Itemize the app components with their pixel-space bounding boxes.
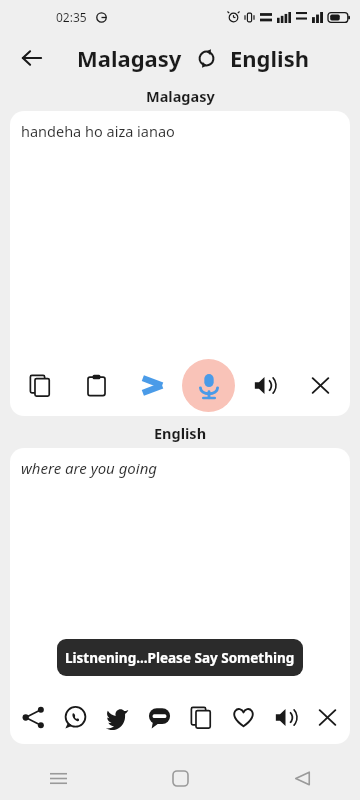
button[interactable]: Recents <box>34 756 82 800</box>
staticText: where are you going <box>21 458 158 478</box>
button[interactable]: Favorite <box>222 690 264 744</box>
button[interactable]: Speak <box>236 354 292 416</box>
button[interactable]: Malagasy <box>77 43 182 73</box>
button[interactable]: Share <box>12 690 54 744</box>
button[interactable]: Speak <box>264 690 306 744</box>
staticText: English <box>230 43 310 73</box>
button[interactable]: Back <box>10 36 54 80</box>
staticText: English <box>154 423 207 443</box>
button[interactable]: Voice input <box>182 359 235 412</box>
button[interactable]: Copy <box>12 354 68 416</box>
button[interactable]: Swap languages <box>192 44 220 72</box>
button[interactable]: Copy <box>180 690 222 744</box>
button[interactable]: Back <box>278 756 326 800</box>
button[interactable]: WhatsApp <box>54 690 96 744</box>
button[interactable]: Twitter <box>96 690 138 744</box>
button[interactable]: Clear <box>306 690 348 744</box>
staticText: Malagasy <box>146 86 215 106</box>
button[interactable]: English <box>230 43 310 73</box>
staticText: Listnening...Please Say Something <box>65 649 295 667</box>
button[interactable]: Clear <box>292 354 348 416</box>
button[interactable]: SMS <box>138 690 180 744</box>
staticText: 02:35 <box>56 9 87 25</box>
staticText: handeha ho aiza ianao <box>21 121 175 141</box>
button[interactable]: Translate <box>124 354 180 416</box>
button[interactable]: Paste <box>68 354 124 416</box>
staticText: Malagasy <box>77 43 182 73</box>
button[interactable]: Home <box>156 756 204 800</box>
